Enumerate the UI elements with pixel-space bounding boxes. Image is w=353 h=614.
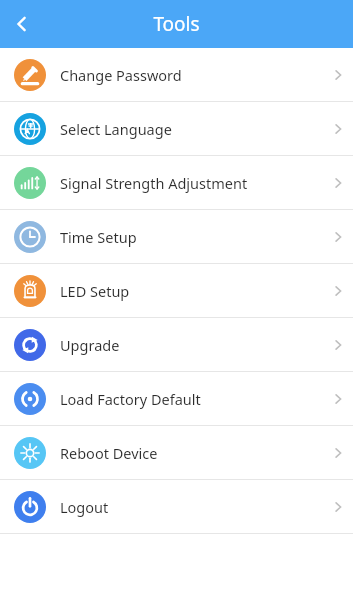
button[interactable]: Reboot Device (0, 426, 353, 479)
button[interactable]: LED Setup (0, 264, 353, 317)
button[interactable]: Select Language (0, 102, 353, 155)
staticText: Time Setup (60, 227, 323, 247)
staticText: Logout (60, 497, 323, 517)
staticText: Tools (153, 11, 200, 37)
button[interactable]: Logout (0, 480, 353, 533)
staticText: Change Password (60, 65, 323, 85)
button[interactable]: Upgrade (0, 318, 353, 371)
staticText: LED Setup (60, 281, 323, 301)
button[interactable]: Time Setup (0, 210, 353, 263)
button[interactable]: Change Password (0, 48, 353, 101)
staticText: Reboot Device (60, 443, 323, 463)
staticText: Signal Strength Adjustment (60, 173, 323, 193)
staticText: Upgrade (60, 335, 323, 355)
staticText: Load Factory Default (60, 389, 323, 409)
staticText: Select Language (60, 119, 323, 139)
button[interactable]: Back (0, 2, 44, 46)
button[interactable]: Signal Strength Adjustment (0, 156, 353, 209)
button[interactable]: Load Factory Default (0, 372, 353, 425)
